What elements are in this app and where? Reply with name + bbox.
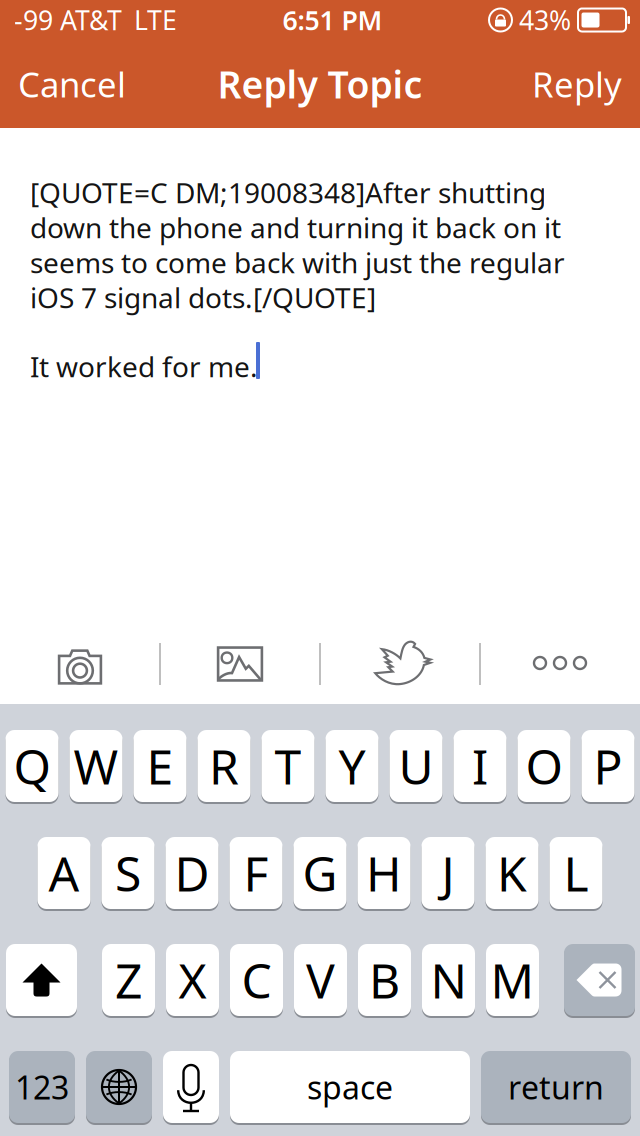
button[interactable]: W	[69, 729, 122, 803]
button[interactable]: Q	[5, 729, 58, 803]
staticText: T	[274, 734, 301, 798]
button[interactable]: I	[453, 729, 506, 803]
staticText: V	[306, 948, 335, 1012]
button[interactable]: R	[197, 729, 250, 803]
button[interactable]: Dictate	[163, 1050, 219, 1124]
button[interactable]: V	[294, 943, 347, 1017]
button[interactable]: Camera	[0, 634, 160, 704]
button[interactable]: C	[230, 943, 283, 1017]
staticText: J	[441, 841, 454, 905]
staticText: 123	[15, 1066, 69, 1108]
button[interactable]: O	[517, 729, 570, 803]
staticText: -99 AT&T	[14, 2, 122, 38]
staticText: seems to come back with just the regular	[30, 244, 565, 281]
staticText: E	[146, 734, 173, 798]
staticText: [QUOTE=C DM;19008348]After shutting	[30, 174, 546, 211]
staticText: Z	[115, 948, 142, 1012]
button[interactable]: J	[421, 836, 474, 910]
staticText: 43%	[519, 2, 571, 38]
staticText: P	[593, 734, 622, 798]
staticText: X	[178, 948, 206, 1012]
staticText: N	[430, 948, 466, 1012]
button[interactable]: space	[230, 1050, 470, 1124]
button[interactable]: Cancel	[4, 40, 140, 128]
staticText: It worked for me.	[30, 348, 258, 385]
staticText: D	[174, 841, 209, 905]
staticText: down the phone and turning it back on it	[30, 209, 561, 246]
staticText: F	[243, 841, 268, 905]
button[interactable]: 123	[9, 1050, 75, 1124]
staticText: S	[115, 841, 141, 905]
staticText: A	[48, 841, 79, 905]
button[interactable]: K	[485, 836, 538, 910]
button[interactable]: E	[133, 729, 186, 803]
staticText: B	[369, 948, 400, 1012]
button[interactable]: Reply	[518, 40, 636, 128]
staticText: I	[472, 734, 488, 798]
button[interactable]: Delete	[564, 943, 635, 1017]
button[interactable]: return	[481, 1050, 631, 1124]
staticText: L	[563, 841, 588, 905]
button[interactable]: U	[389, 729, 442, 803]
button[interactable]: Shift	[6, 943, 77, 1017]
staticText: O	[525, 734, 562, 798]
staticText: K	[497, 841, 527, 905]
button[interactable]: A	[37, 836, 90, 910]
staticText: G	[302, 841, 337, 905]
button[interactable]: B	[358, 943, 411, 1017]
button[interactable]: N	[422, 943, 475, 1017]
staticText: W	[73, 734, 118, 798]
staticText: U	[398, 734, 433, 798]
button[interactable]: F	[229, 836, 282, 910]
staticText: LTE	[134, 2, 177, 38]
button[interactable]: Next keyboard	[86, 1050, 152, 1124]
button[interactable]: More options	[480, 634, 640, 704]
button[interactable]: D	[165, 836, 218, 910]
button[interactable]: H	[357, 836, 410, 910]
staticText: return	[508, 1066, 604, 1108]
button[interactable]: Twitter	[320, 634, 480, 704]
staticText: 6:51 PM	[282, 2, 382, 38]
staticText: iOS 7 signal dots.[/QUOTE]	[30, 279, 376, 316]
staticText: Reply Topic	[217, 59, 422, 109]
staticText: Cancel	[18, 61, 126, 107]
staticText: C	[241, 948, 271, 1012]
staticText: H	[366, 841, 402, 905]
button[interactable]: X	[166, 943, 219, 1017]
button[interactable]: S	[101, 836, 154, 910]
button[interactable]: Z	[102, 943, 155, 1017]
button[interactable]: P	[581, 729, 634, 803]
button[interactable]: Photo Library	[160, 634, 320, 704]
button[interactable]: T	[261, 729, 314, 803]
staticText: Q	[13, 734, 50, 798]
staticText: M	[490, 948, 534, 1012]
button[interactable]: Y	[325, 729, 378, 803]
button[interactable]: L	[549, 836, 602, 910]
button[interactable]: M	[486, 943, 539, 1017]
button[interactable]: G	[293, 836, 346, 910]
staticText: R	[209, 734, 239, 798]
staticText: Y	[338, 734, 365, 798]
staticText: Reply	[532, 61, 622, 107]
staticText: space	[307, 1066, 393, 1108]
